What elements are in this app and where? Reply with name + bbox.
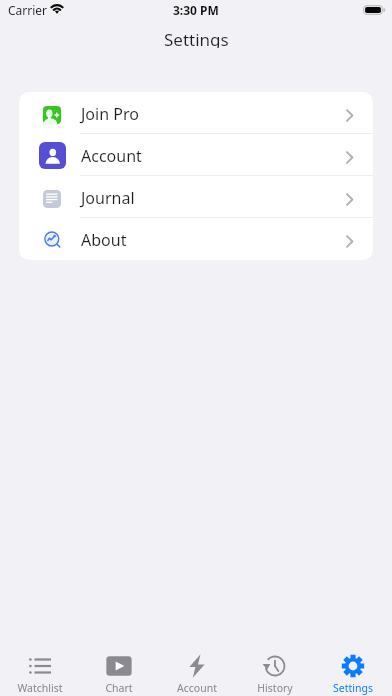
staticText: Settings <box>164 28 229 48</box>
button[interactable]: About <box>19 218 373 260</box>
staticText: Carrier <box>8 2 48 18</box>
button[interactable]: Chart <box>79 650 158 696</box>
staticText: Settings <box>333 681 373 695</box>
staticText: Account <box>81 145 142 167</box>
button[interactable]: Settings <box>314 650 392 696</box>
staticText: History <box>257 681 293 695</box>
staticText: Watchlist <box>17 681 63 695</box>
button[interactable]: Account <box>158 650 236 696</box>
button[interactable]: History <box>236 650 314 696</box>
staticText: Join Pro <box>81 103 139 125</box>
button[interactable]: Account <box>19 134 373 176</box>
staticText: Chart <box>105 681 133 695</box>
button[interactable]: Watchlist <box>0 650 79 696</box>
staticText: Journal <box>81 187 135 209</box>
staticText: 3:30 PM <box>173 2 219 18</box>
button[interactable]: Join Pro <box>19 92 373 134</box>
staticText: Account <box>177 681 217 695</box>
button[interactable]: Journal <box>19 176 373 218</box>
staticText: About <box>81 229 127 251</box>
